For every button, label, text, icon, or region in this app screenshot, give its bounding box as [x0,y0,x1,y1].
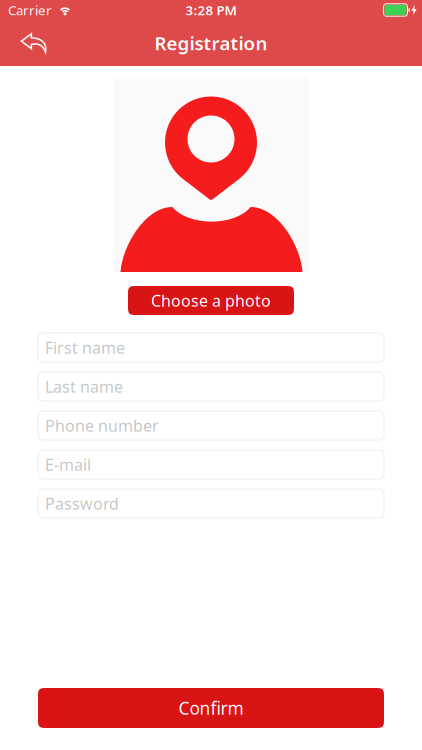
button[interactable]: Back [0,20,60,65]
staticText: Registration [154,31,267,55]
staticText: Last name [45,376,123,397]
staticText: 3:28 PM [185,1,236,19]
button[interactable]: Choose a photo [128,286,294,315]
button[interactable]: Password [38,489,384,518]
button[interactable]: Phone number [38,411,384,440]
button[interactable]: Last name [38,372,384,401]
staticText: Phone number [45,415,159,436]
staticText: Choose a photo [151,290,271,311]
staticText: Password [45,493,119,514]
staticText: First name [45,337,125,358]
button[interactable]: First name [38,333,384,362]
button[interactable]: E-mail [38,450,384,479]
staticText: E-mail [45,454,91,475]
staticText: Confirm [178,696,243,719]
button[interactable]: Confirm [38,688,384,728]
staticText: Carrier [8,1,52,19]
